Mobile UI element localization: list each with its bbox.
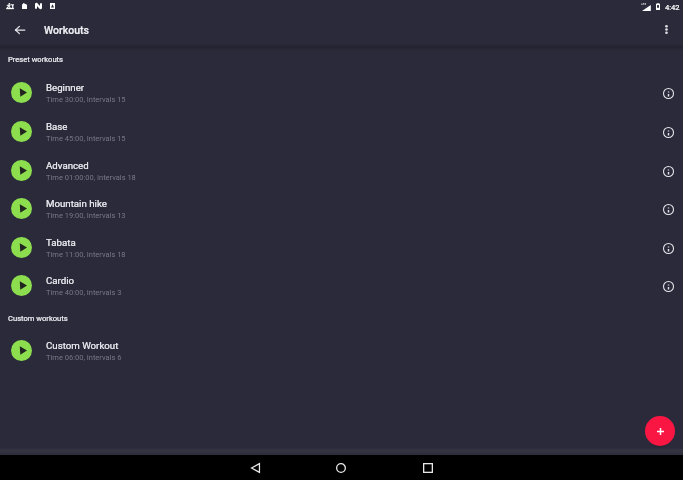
staticText: Preset workouts (8, 55, 64, 64)
button[interactable]: Workout info (656, 120, 680, 144)
staticText: Time 06:00, Intervals 6 (46, 353, 122, 362)
button[interactable]: Recent apps (413, 455, 443, 480)
button[interactable]: Cardio (0, 266, 683, 305)
button[interactable]: Mountain hike (0, 189, 683, 228)
button[interactable]: Workout info (656, 274, 680, 298)
staticText: Beginner (46, 82, 85, 93)
button[interactable]: Base (0, 112, 683, 151)
staticText: Time 11:00, Intervals 18 (46, 250, 126, 259)
staticText: Base (46, 121, 68, 132)
button[interactable]: Beginner (0, 73, 683, 112)
staticText: 4:42 (665, 3, 680, 12)
staticText: Time 01:00:00, Intervals 18 (46, 173, 136, 182)
button[interactable]: Home (326, 455, 356, 480)
staticText: Time 30:00, Intervals 15 (46, 95, 126, 104)
button[interactable]: Workout info (656, 159, 680, 183)
staticText: Tabata (46, 237, 76, 248)
staticText: Cardio (46, 275, 75, 286)
staticText: Time 45:00, Intervals 15 (46, 134, 126, 143)
staticText: Workouts (44, 24, 89, 36)
button[interactable]: Back (240, 455, 270, 480)
staticText: Time 40:00, Intervals 3 (46, 288, 122, 297)
button[interactable]: Workout info (656, 81, 680, 105)
staticText: Advanced (46, 160, 89, 171)
staticText: Custom Workout (46, 340, 119, 351)
staticText: Time 19:00, Intervals 13 (46, 211, 126, 220)
button[interactable]: Tabata (0, 228, 683, 267)
button[interactable]: Add workout (645, 416, 675, 446)
button[interactable]: Navigate up (8, 18, 31, 41)
button[interactable]: More options (655, 18, 678, 41)
staticText: Custom workouts (8, 314, 68, 323)
staticText: Mountain hike (46, 198, 107, 209)
button[interactable]: Custom Workout (0, 331, 683, 370)
button[interactable]: Workout info (656, 197, 680, 221)
button[interactable]: Workout info (656, 236, 680, 260)
button[interactable]: Advanced (0, 151, 683, 190)
